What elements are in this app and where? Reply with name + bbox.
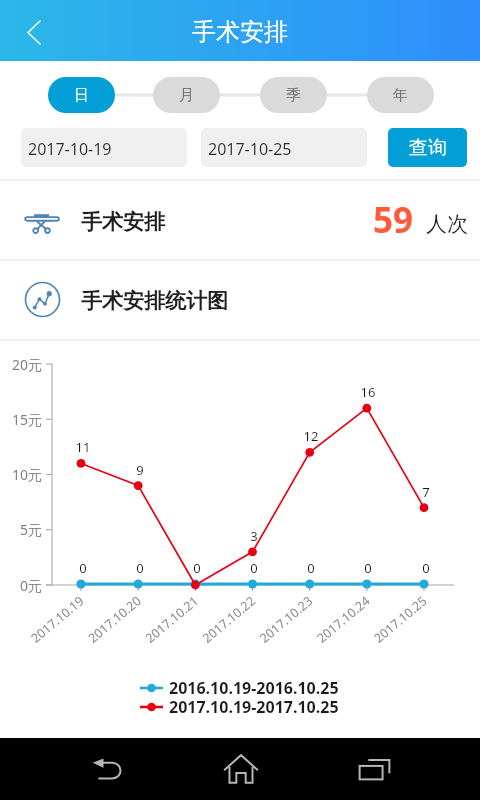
staticText: 0 (177, 559, 217, 577)
staticText: 9 (120, 461, 160, 479)
button[interactable]: 日 (48, 77, 115, 113)
staticText: 手术安排 (192, 17, 288, 47)
button[interactable]: 查询 (388, 128, 467, 167)
staticText: 10元 (0, 465, 42, 484)
button[interactable]: Recent apps (330, 738, 418, 800)
staticText: 0 (406, 559, 446, 577)
button[interactable]: Back (64, 738, 152, 800)
button[interactable]: 月 (153, 77, 220, 113)
button[interactable]: 年 (367, 77, 434, 113)
staticText: 15元 (0, 410, 42, 429)
staticText: 0 (348, 559, 388, 577)
button[interactable]: 2017-10-25 (201, 128, 367, 167)
staticText: 2017-10-19 (28, 138, 112, 160)
button[interactable]: Back (0, 0, 62, 61)
staticText: 2017-10-25 (208, 138, 292, 160)
staticText: 手术安排统计图 (81, 288, 228, 314)
staticText: 0元 (0, 576, 42, 595)
staticText: 年 (393, 86, 408, 105)
staticText: 20元 (0, 355, 42, 374)
button[interactable]: 季 (260, 77, 327, 113)
staticText: 查询 (409, 136, 447, 160)
button[interactable]: 2017-10-19 (21, 128, 187, 167)
staticText: 0 (291, 559, 331, 577)
staticText: 0 (234, 559, 274, 577)
staticText: 手术安排 (81, 209, 165, 235)
staticText: 12 (291, 427, 331, 445)
staticText: 季 (286, 86, 301, 105)
button[interactable]: 2017.10.19-2017.10.25 (140, 696, 339, 718)
staticText: 0 (63, 559, 103, 577)
staticText: 5元 (0, 520, 42, 539)
staticText: 月 (179, 86, 194, 105)
staticText: 16 (348, 383, 388, 401)
staticText: 2016.10.19-2016.10.25 (169, 677, 339, 699)
staticText: 3 (234, 527, 274, 545)
button[interactable]: 手术安排统计图 (0, 261, 480, 339)
staticText: 11 (63, 438, 103, 456)
button[interactable]: 手术安排 (0, 181, 480, 259)
staticText: 7 (406, 483, 446, 501)
button[interactable]: 2016.10.19-2016.10.25 (140, 677, 339, 699)
staticText: 日 (74, 86, 89, 105)
staticText: 人次 (426, 211, 468, 237)
staticText: 59 (373, 196, 414, 244)
staticText: 2017.10.19-2017.10.25 (169, 696, 339, 718)
staticText: 0 (120, 559, 160, 577)
button[interactable]: Home (197, 738, 285, 800)
